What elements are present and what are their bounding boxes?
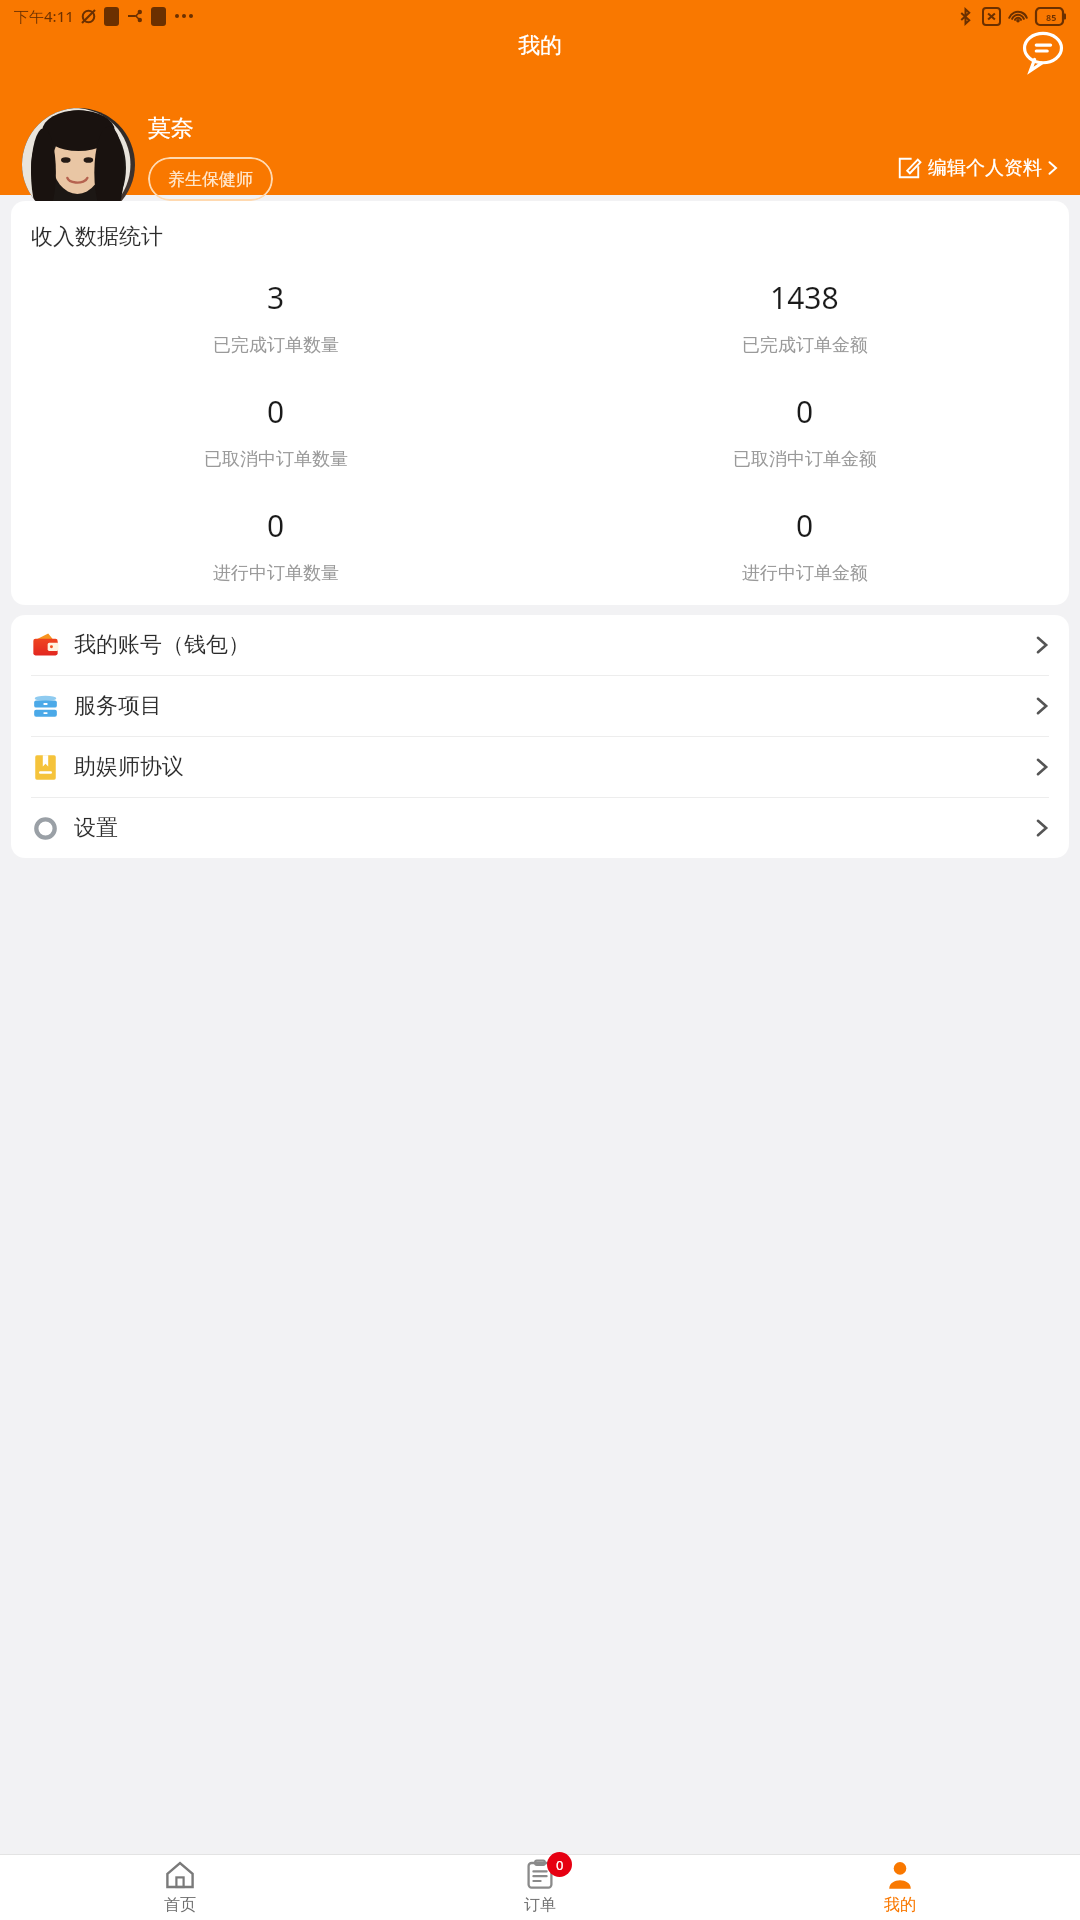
staticText: 进行中订单金额 (742, 562, 868, 585)
button[interactable]: 0 (360, 1855, 720, 1920)
staticText: 首页 (164, 1895, 196, 1915)
staticText: 0 (267, 505, 285, 546)
staticText: 0 (267, 391, 285, 432)
staticText: 1438 (770, 277, 839, 318)
staticText: 已完成订单数量 (213, 334, 339, 357)
staticText: 莫奈 (148, 114, 194, 143)
staticText: 85 (1046, 11, 1057, 23)
button[interactable]: 首页 (0, 1855, 360, 1920)
button[interactable]: 工作照 (30, 205, 127, 247)
staticText: 助娱师协议 (74, 753, 184, 781)
staticText: 订单 (524, 1895, 556, 1915)
staticText: 工作照 (56, 217, 101, 236)
staticText: 已取消中订单金额 (733, 448, 877, 471)
staticText: 服务项目 (74, 692, 162, 720)
staticText: 设置 (74, 814, 118, 842)
button[interactable]: 我的账号（钱包） (11, 615, 1069, 675)
button[interactable]: 编辑个人资料 (890, 150, 1066, 186)
staticText: 收入数据统计 (31, 223, 163, 251)
staticText: 进行中订单数量 (213, 562, 339, 585)
button[interactable]: Avatar (22, 108, 135, 221)
button[interactable]: 设置 (11, 798, 1069, 858)
button[interactable]: 我的 (720, 1855, 1080, 1920)
staticText: 好评率：66.66% (148, 219, 289, 245)
button[interactable]: 服务项目 (11, 676, 1069, 736)
button[interactable]: Messages (1020, 28, 1066, 74)
staticText: 我的 (884, 1895, 916, 1915)
staticText: 0 (796, 391, 814, 432)
staticText: 下午4:11 (14, 6, 74, 26)
staticText: 养生保健师 (168, 169, 253, 190)
staticText: 3 (267, 277, 285, 318)
staticText: 编辑个人资料 (928, 156, 1042, 180)
staticText: 0 (796, 505, 814, 546)
button[interactable]: 养生保健师 (168, 157, 253, 201)
staticText: 已取消中订单数量 (204, 448, 348, 471)
button[interactable]: 助娱师协议 (11, 737, 1069, 797)
staticText: 0 (556, 1856, 564, 1874)
staticText: 我的 (518, 32, 562, 60)
staticText: 我的账号（钱包） (74, 631, 250, 659)
staticText: 已完成订单金额 (742, 334, 868, 357)
